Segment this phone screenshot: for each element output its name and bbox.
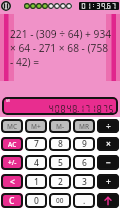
button[interactable]: C [1,193,23,208]
button[interactable]: . [73,193,95,208]
button[interactable]: 7 [25,137,47,151]
staticText: 221 - (309 ÷ 64) + 934 [10,27,112,41]
staticText: MC [7,122,18,131]
staticText: − [106,157,111,169]
staticText: < [10,176,15,188]
staticText: MR [79,122,90,131]
staticText: . [83,195,86,207]
button[interactable]: +/- [1,155,23,170]
staticText: 01:39.67 [81,2,117,10]
staticText: 5 [58,157,63,169]
staticText: 4 [34,157,39,169]
staticText: C [9,195,15,207]
staticText: + [106,176,111,188]
button[interactable]: MR [73,119,95,133]
staticText: 00 [56,196,64,205]
button[interactable]: 9 [73,137,95,151]
button[interactable]: M+ [25,119,47,133]
staticText: 7 [34,138,39,150]
button[interactable]: Pause [1,1,11,11]
staticText: - 42) = [10,55,40,69]
staticText: M [6,98,10,103]
staticText: ÷ [106,120,111,132]
staticText: 9 [82,138,87,150]
staticText: +/- [8,158,17,167]
button[interactable]: 1 [25,174,47,189]
button[interactable]: < [1,174,23,189]
button[interactable]: 2 [49,174,71,189]
button[interactable]: 00 [49,193,71,208]
button[interactable]: 3 [73,174,95,189]
button[interactable]: ÷ [97,119,119,133]
staticText: 8 [58,138,63,150]
staticText: 3 [82,176,87,188]
button[interactable]: 6 [73,155,95,170]
staticText: M- [56,122,65,131]
button[interactable]: − [97,155,119,170]
button[interactable]: 0 [25,193,47,208]
staticText: 40848.171875 [48,104,114,114]
staticText: AC [8,140,17,149]
button[interactable]: M- [49,119,71,133]
button[interactable]: 8 [49,137,71,151]
staticText: 0 [34,195,39,207]
button[interactable]: 5 [49,155,71,170]
staticText: M+ [31,122,41,131]
button[interactable]: Equals [97,193,119,208]
button[interactable]: × [97,137,119,151]
button[interactable]: AC [1,137,23,151]
button[interactable]: MC [1,119,23,133]
staticText: 2 [58,176,63,188]
button[interactable]: 4 [25,155,47,170]
button[interactable]: + [97,174,119,189]
staticText: 6 [82,157,87,169]
staticText: 1 [34,176,39,188]
staticText: × 64 - 271 × 68 - (758 [10,41,109,55]
staticText: × [106,138,111,150]
